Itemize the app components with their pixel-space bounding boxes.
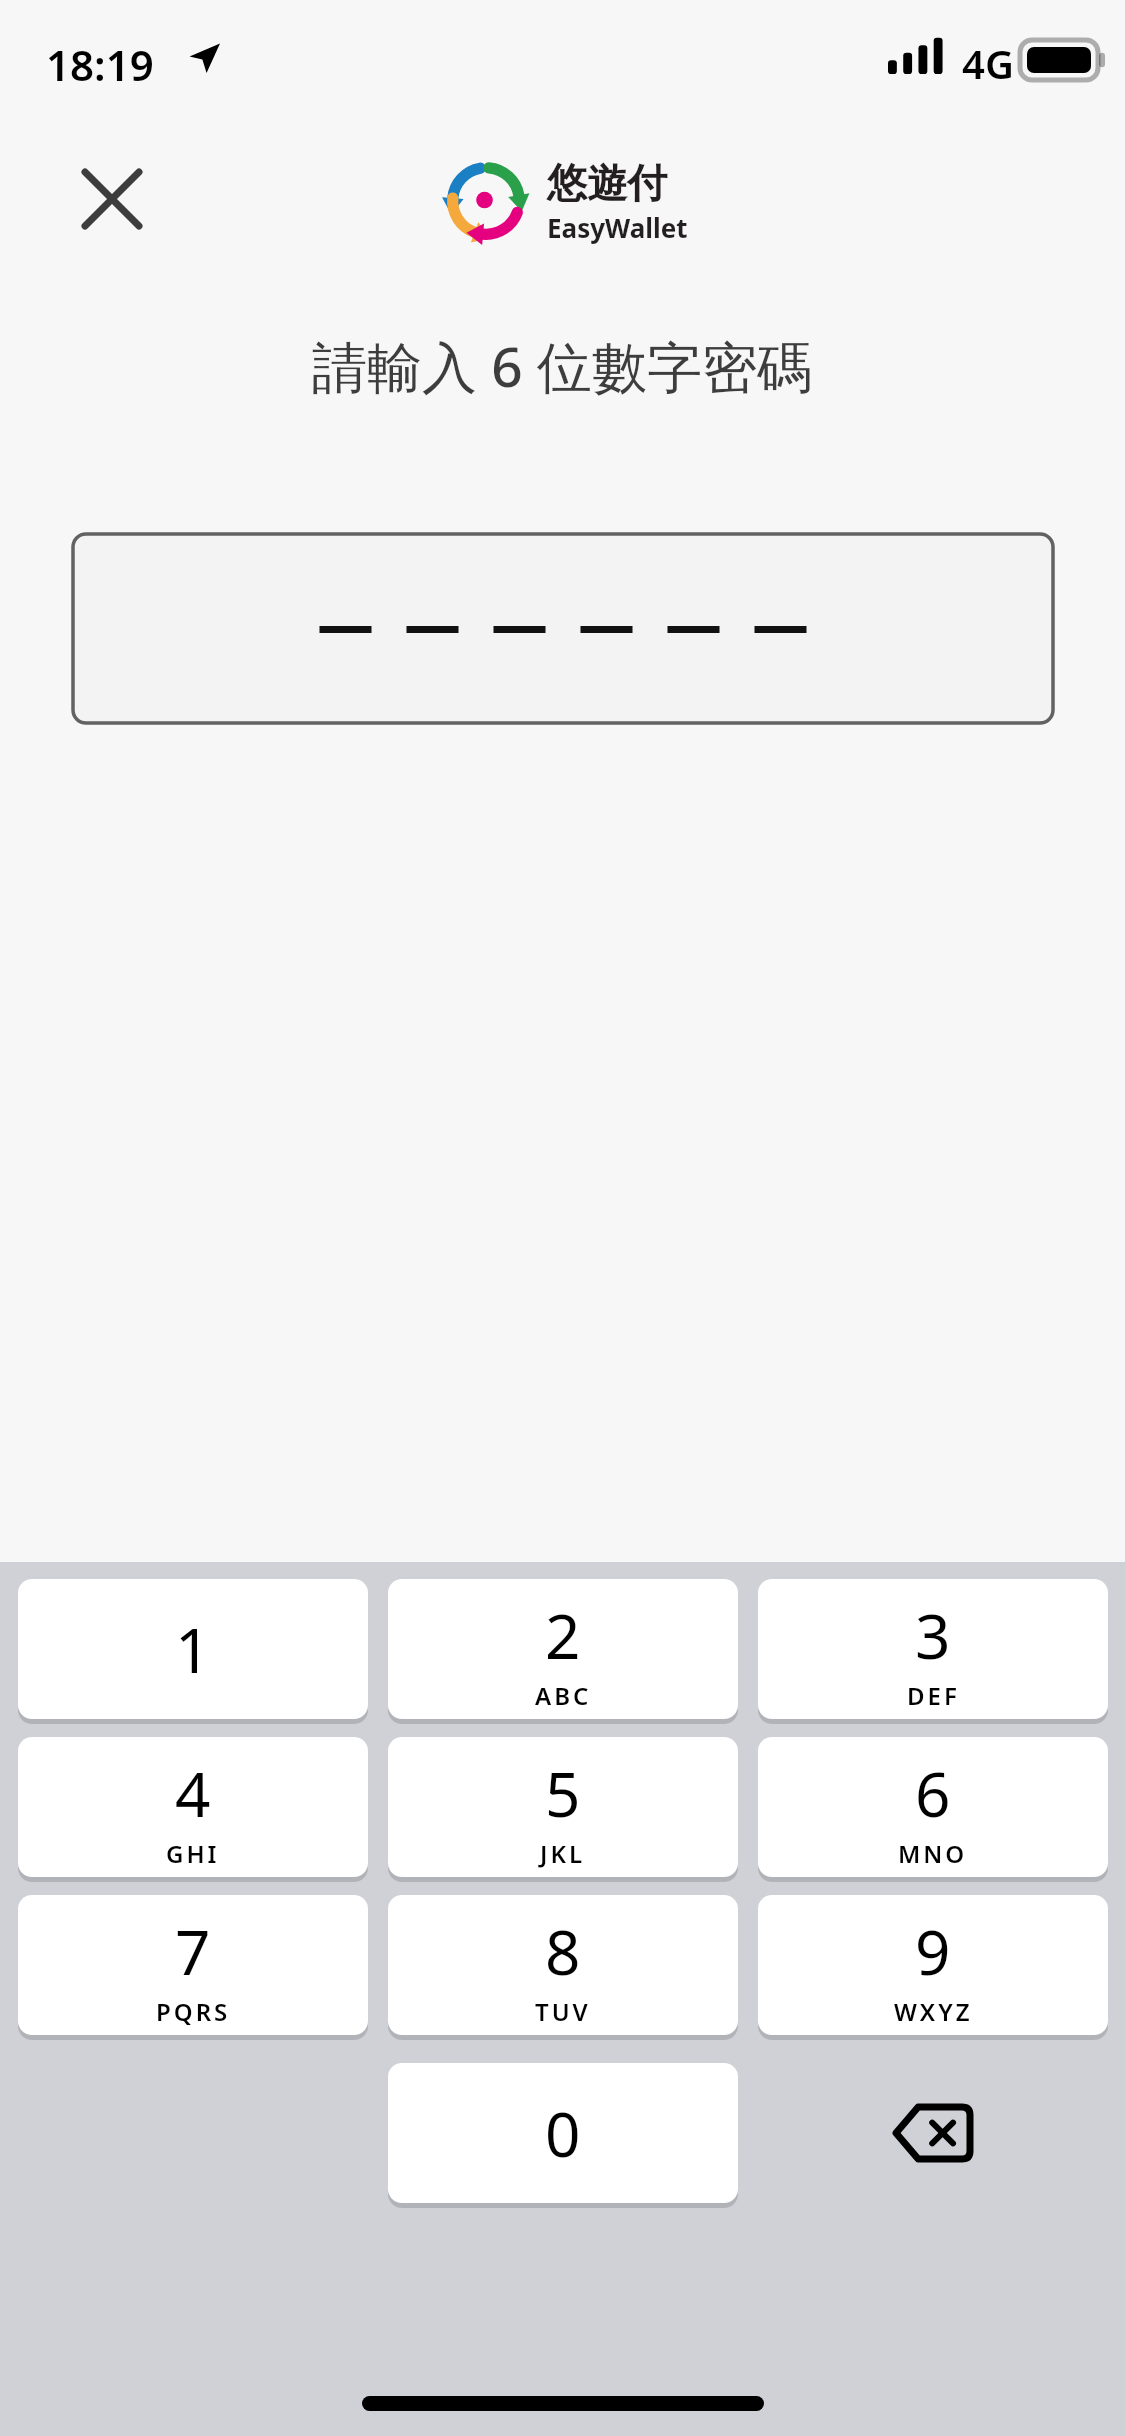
button[interactable]: 4: [18, 1737, 368, 1877]
staticText: 悠遊付: [547, 158, 667, 208]
staticText: ABC: [535, 1679, 592, 1712]
button[interactable]: 8: [388, 1895, 738, 2035]
staticText: JKL: [540, 1837, 586, 1870]
staticText: 4: [175, 1751, 211, 1835]
button[interactable]: 2: [388, 1579, 738, 1719]
button[interactable]: 9: [758, 1895, 1108, 2035]
staticText: MNO: [898, 1837, 968, 1870]
button[interactable]: Close: [52, 139, 172, 259]
staticText: PQRS: [156, 1995, 231, 2028]
staticText: 7: [175, 1909, 211, 1993]
staticText: 6: [915, 1751, 951, 1835]
button[interactable]: 6: [758, 1737, 1108, 1877]
staticText: 18:19: [46, 36, 154, 93]
staticText: 9: [915, 1909, 951, 1993]
button[interactable]: 0: [388, 2063, 738, 2203]
staticText: GHI: [166, 1837, 220, 1870]
staticText: 3: [915, 1593, 951, 1677]
button[interactable]: Backspace: [758, 2063, 1108, 2203]
staticText: 4G: [962, 36, 1014, 90]
button[interactable]: 7: [18, 1895, 368, 2035]
staticText: 0: [545, 2091, 581, 2175]
staticText: TUV: [535, 1995, 591, 2028]
button[interactable]: 1: [18, 1579, 368, 1719]
staticText: WXYZ: [894, 1995, 973, 2028]
button[interactable]: 3: [758, 1579, 1108, 1719]
staticText: 2: [545, 1593, 581, 1677]
staticText: 1: [175, 1607, 211, 1691]
staticText: EasyWallet: [547, 210, 688, 245]
button[interactable]: [73, 534, 1053, 723]
button[interactable]: 5: [388, 1737, 738, 1877]
staticText: 請輸入 6 位數字密碼: [312, 328, 813, 403]
staticText: 5: [545, 1751, 581, 1835]
staticText: 8: [545, 1909, 581, 1993]
staticText: DEF: [907, 1679, 960, 1712]
